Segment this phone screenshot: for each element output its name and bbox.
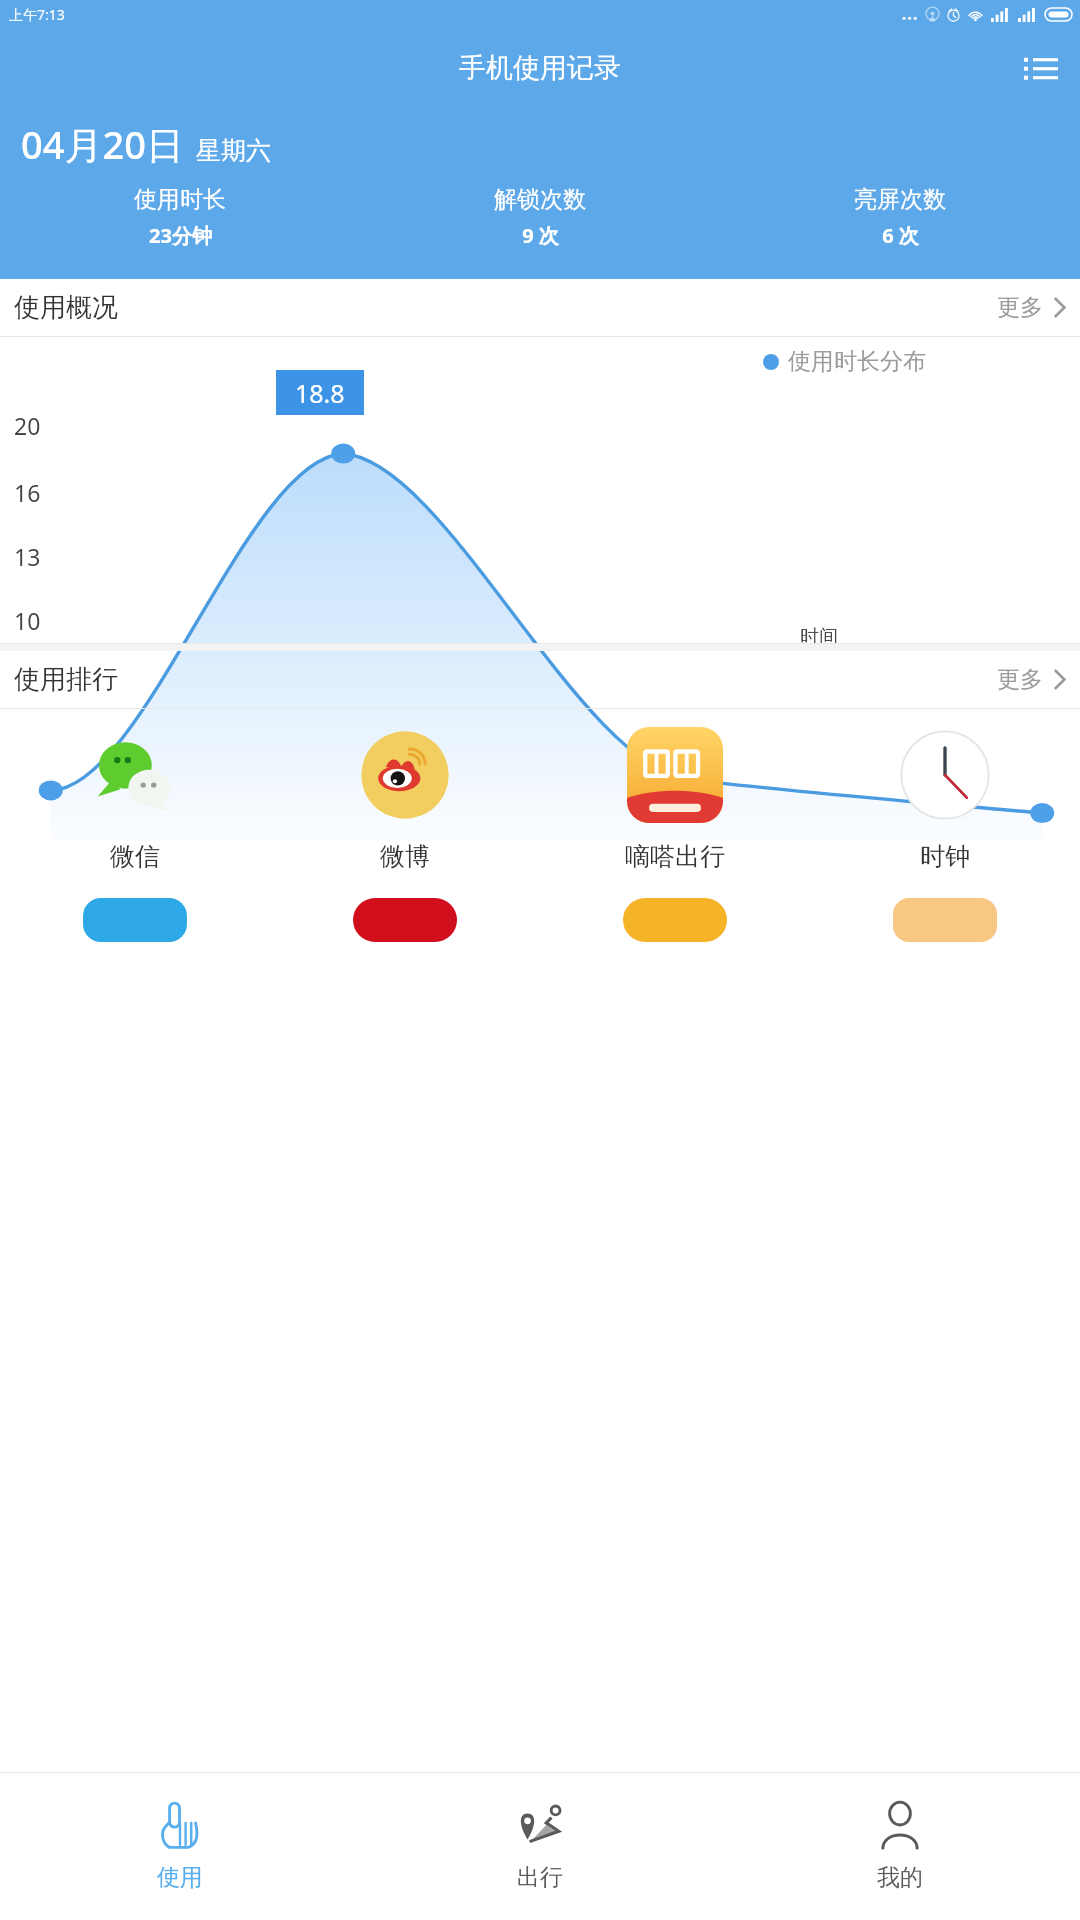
staticText: 微信: [110, 841, 160, 872]
staticText: 时间: [800, 625, 838, 643]
staticText: 使用时长分布: [788, 347, 926, 376]
button[interactable]: 使用概况: [0, 279, 1080, 336]
staticText: 亮屏次数: [854, 185, 946, 214]
button[interactable]: [0, 898, 270, 942]
staticText: 更多: [997, 665, 1043, 694]
staticText: 时钟: [920, 841, 970, 872]
staticText: 18.8: [295, 376, 345, 410]
staticText: 手机使用记录: [459, 51, 621, 85]
button[interactable]: 微信: [0, 723, 270, 872]
staticText: 10: [14, 605, 41, 636]
staticText: 微博: [380, 841, 430, 872]
button[interactable]: [810, 898, 1080, 942]
button[interactable]: 出行: [360, 1773, 720, 1920]
staticText: 使用: [157, 1863, 203, 1892]
staticText: 使用排行: [14, 663, 118, 696]
staticText: 使用概况: [14, 291, 118, 324]
staticText: 20: [14, 410, 41, 441]
staticText: 9 次: [522, 222, 559, 249]
staticText: 上午7:13: [9, 5, 65, 24]
button[interactable]: [540, 898, 810, 942]
staticText: 使用时长: [134, 185, 226, 214]
staticText: 我的: [877, 1863, 923, 1892]
staticText: 出行: [517, 1863, 563, 1892]
staticText: 23分钟: [149, 222, 212, 249]
button[interactable]: 使用: [0, 1773, 360, 1920]
button[interactable]: 微博: [270, 723, 540, 872]
staticText: 6 次: [882, 222, 919, 249]
button[interactable]: 嘀嗒出行: [540, 723, 810, 872]
staticText: 更多: [997, 293, 1043, 322]
staticText: 星期六: [196, 135, 271, 166]
staticText: 嘀嗒出行: [625, 841, 725, 872]
button[interactable]: 亮屏次数: [720, 185, 1080, 249]
button[interactable]: 使用时长: [0, 185, 360, 249]
staticText: 16: [14, 477, 41, 508]
staticText: 04月20日: [21, 118, 184, 170]
button[interactable]: 我的: [720, 1773, 1080, 1920]
button[interactable]: Menu: [1012, 39, 1070, 97]
staticText: 解锁次数: [494, 185, 586, 214]
staticText: 13: [14, 541, 41, 572]
button[interactable]: 时钟: [810, 723, 1080, 872]
button[interactable]: 使用排行: [0, 651, 1080, 708]
button[interactable]: [270, 898, 540, 942]
button[interactable]: 解锁次数: [360, 185, 720, 249]
